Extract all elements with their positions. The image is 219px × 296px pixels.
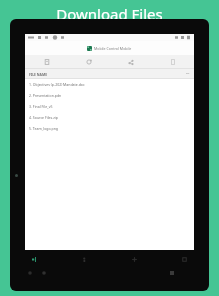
staticText: 4. Source Files.zip (29, 115, 58, 120)
button[interactable]: Downloads (10, 252, 59, 266)
button[interactable]: Back (28, 271, 32, 275)
button[interactable]: Sync (68, 55, 110, 69)
staticText: Download Files (56, 4, 163, 24)
button[interactable]: Shared (110, 55, 152, 69)
button[interactable]: 4. Source Files.zip (25, 112, 194, 123)
button[interactable]: FILE NAME (25, 69, 194, 79)
staticText: 2. Presentation.pdn (29, 93, 62, 98)
button[interactable]: Documents (25, 55, 68, 69)
button[interactable]: 1. Objectives (p-202) Mandate.doc (25, 79, 194, 90)
staticText: 1. Objectives (p-202) Mandate.doc (29, 82, 85, 87)
staticText: FILE NAME (29, 72, 48, 77)
button[interactable]: Settings (109, 252, 159, 266)
button[interactable]: 3. Final File_v5 (25, 101, 194, 112)
button[interactable]: 5. Team_logo.png (25, 123, 194, 134)
button[interactable]: 2. Presentation.pdn (25, 90, 194, 101)
button[interactable]: Home (42, 271, 46, 275)
button[interactable]: More (159, 252, 209, 266)
staticText: Mobile Control Mobile (94, 46, 132, 51)
staticText: 3. Final File_v5 (29, 104, 53, 109)
staticText: 5. Team_logo.png (29, 126, 59, 131)
button[interactable]: Files (152, 55, 194, 69)
staticText: ••• (186, 72, 190, 76)
